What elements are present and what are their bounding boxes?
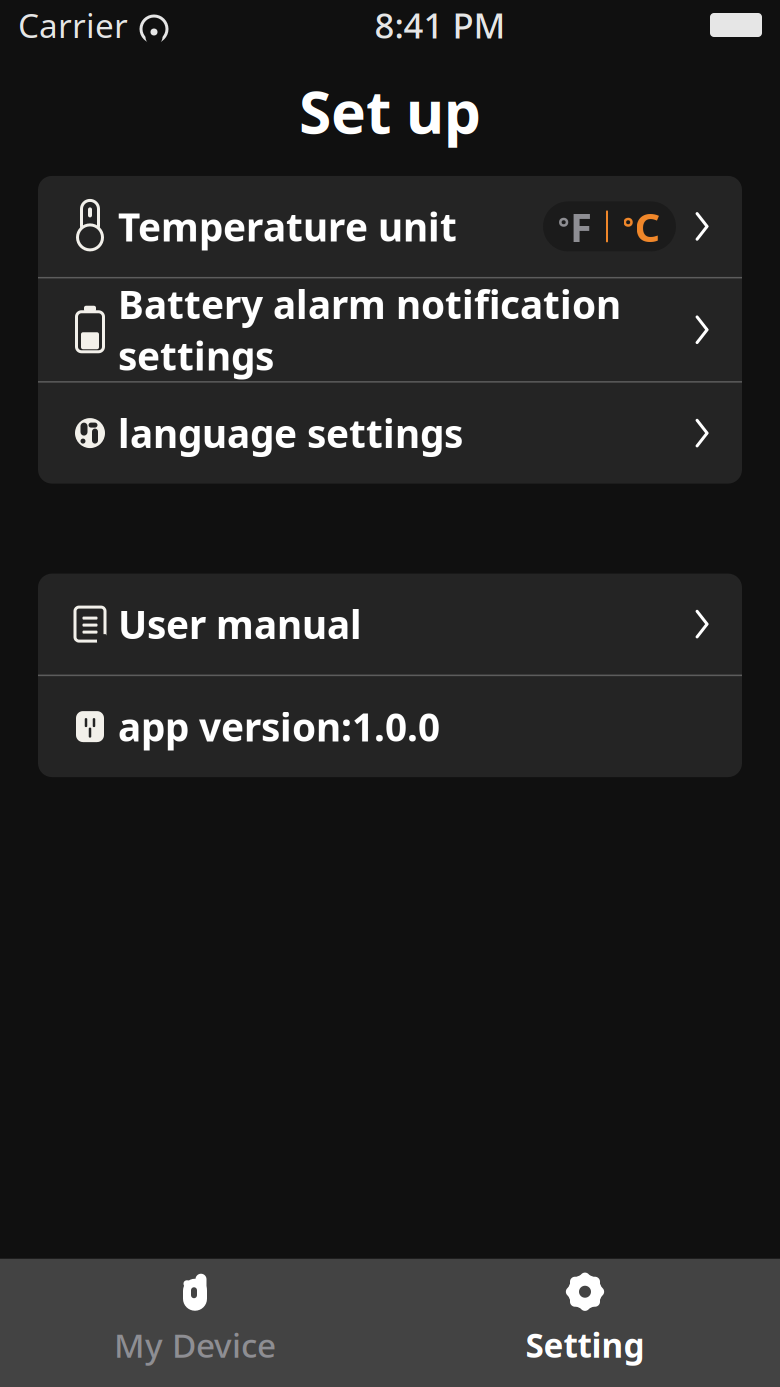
staticText: Setting bbox=[525, 1323, 644, 1367]
staticText: C bbox=[634, 200, 660, 253]
button[interactable]: Battery alarm notification settings bbox=[38, 278, 742, 381]
staticText: My Device bbox=[114, 1323, 276, 1367]
staticText: Carrier bbox=[18, 3, 128, 47]
button[interactable]: Temperature unit bbox=[38, 176, 742, 277]
staticText: Set up bbox=[299, 72, 481, 150]
staticText: Temperature unit bbox=[118, 201, 457, 252]
staticText: User manual bbox=[118, 598, 362, 650]
staticText: ° bbox=[622, 209, 633, 244]
button[interactable]: User manual bbox=[38, 574, 742, 675]
staticText: language settings bbox=[118, 407, 463, 459]
button[interactable]: Setting bbox=[390, 1259, 780, 1387]
button[interactable]: My Device bbox=[0, 1259, 390, 1387]
staticText: 8:41 PM bbox=[374, 2, 505, 48]
staticText: F bbox=[570, 200, 592, 253]
staticText: Battery alarm notification settings bbox=[118, 278, 621, 381]
button[interactable]: language settings bbox=[38, 383, 742, 484]
staticText: ° bbox=[558, 209, 569, 244]
button[interactable]: app version:1.0.0 bbox=[38, 676, 742, 777]
staticText: app version:1.0.0 bbox=[118, 701, 440, 752]
